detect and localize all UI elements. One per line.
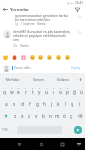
staticText: 12s: [13, 44, 18, 48]
button[interactable]: Recents: [52, 138, 73, 150]
button[interactable]: j: [48, 98, 55, 110]
button[interactable]: Paylaş: [70, 66, 82, 70]
button[interactable]: 6: [36, 86, 43, 98]
button[interactable]: ş: [69, 98, 76, 110]
button[interactable]: gunesmanzaralari gercekten harika bir ka…: [15, 14, 82, 26]
staticText: Yorum ekle...: [14, 66, 33, 70]
staticText: q: [3, 89, 6, 96]
staticText: ö: [63, 113, 66, 120]
staticText: Yanıtla: [20, 44, 29, 48]
staticText: 3: [18, 87, 20, 90]
button[interactable]: 5: [29, 86, 36, 98]
staticText: s: [13, 101, 16, 108]
button[interactable]: f: [26, 98, 34, 110]
button[interactable]: ö: [61, 110, 68, 122]
button[interactable]: 7: [43, 86, 50, 98]
staticText: w: [10, 89, 14, 96]
button[interactable]: ç: [68, 110, 75, 122]
staticText: 6: [39, 87, 41, 90]
button[interactable]: Emoji reaction: [37, 54, 44, 61]
staticText: 9: [60, 87, 62, 90]
button[interactable]: Emoji reaction: [55, 54, 62, 61]
staticText: 1 beğenme: [21, 22, 35, 26]
staticText: f: [29, 101, 31, 108]
button[interactable]: g: [34, 98, 41, 110]
staticText: 14:41: [75, 1, 83, 5]
staticText: c: [28, 113, 31, 120]
button[interactable]: Kullanıcı: [51, 73, 76, 86]
staticText: g: [36, 101, 39, 108]
button[interactable]: 9: [57, 86, 64, 98]
staticText: i: [79, 101, 81, 108]
button[interactable]: Emoji reaction: [2, 54, 9, 61]
button[interactable]: Shift: [0, 110, 11, 122]
button[interactable]: Emoji reaction: [29, 54, 36, 61]
button[interactable]: Backspace: [75, 110, 85, 122]
button[interactable]: Home: [30, 138, 52, 150]
staticText: z: [14, 113, 17, 120]
button[interactable]: ,: [9, 122, 17, 138]
button[interactable]: 3: [15, 86, 22, 98]
button[interactable]: Voice input: [76, 73, 84, 86]
button[interactable]: i: [76, 98, 83, 110]
staticText: 2: [11, 87, 13, 90]
staticText: Tamam: [33, 78, 44, 82]
button[interactable]: Tamam: [26, 73, 51, 86]
button[interactable]: k: [55, 98, 62, 110]
button[interactable]: Like: [77, 14, 82, 19]
staticText: n: [49, 113, 52, 120]
button[interactable]: Merhaba: [0, 73, 26, 86]
staticText: 0: [67, 87, 69, 90]
staticText: ş: [71, 101, 74, 108]
button[interactable]: Share: [69, 6, 85, 13]
button[interactable]: Emoji reaction: [20, 54, 27, 61]
button[interactable]: Emoji reaction: [64, 54, 71, 61]
button[interactable]: 2: [8, 86, 15, 98]
button[interactable]: h: [41, 98, 48, 110]
button[interactable]: d: [18, 98, 26, 110]
button[interactable]: 8: [50, 86, 57, 98]
button[interactable]: n: [47, 110, 54, 122]
button[interactable]: deniz981 Bunuçksd en-pıkı kazandiras, e…: [3, 30, 82, 48]
staticText: ç: [70, 113, 73, 120]
button[interactable]: x: [19, 110, 26, 122]
button[interactable]: Hide keyboard: [73, 138, 85, 150]
button[interactable]: ?123: [0, 122, 9, 138]
staticText: Kullanıcı: [57, 78, 70, 82]
button[interactable]: Emoji reaction: [11, 54, 18, 61]
button[interactable]: Like: [77, 30, 82, 35]
button[interactable]: b: [40, 110, 47, 122]
staticText: r: [25, 89, 27, 96]
staticText: m: [55, 113, 60, 120]
button[interactable]: l: [62, 98, 69, 110]
staticText: gunesmanzaralari gercekten harika bir ka…: [15, 14, 69, 22]
button[interactable]: Send: [74, 126, 82, 134]
button[interactable]: 0: [64, 86, 71, 98]
staticText: 5: [32, 87, 34, 90]
staticText: e: [17, 89, 20, 96]
button[interactable]: Emoji reaction: [46, 54, 53, 61]
staticText: y: [38, 89, 41, 96]
button[interactable]: s: [10, 98, 18, 110]
button[interactable]: a: [2, 98, 10, 110]
staticText: Merhaba: [6, 78, 20, 82]
staticText: Paylaş: [71, 66, 81, 70]
button[interactable]: Back: [8, 138, 30, 150]
staticText: k: [57, 101, 60, 108]
staticText: h: [43, 101, 46, 108]
staticText: ğ: [73, 89, 76, 96]
button[interactable]: ğ: [71, 86, 78, 98]
button[interactable]: m: [54, 110, 61, 122]
staticText: v: [35, 113, 38, 120]
button[interactable]: 4: [22, 86, 29, 98]
button[interactable]: 1: [0, 86, 8, 98]
staticText: d: [21, 101, 24, 108]
button[interactable]: z: [11, 110, 19, 122]
button[interactable]: c: [26, 110, 33, 122]
button[interactable]: ü: [78, 86, 85, 98]
staticText: x: [21, 113, 24, 120]
button[interactable]: v: [33, 110, 40, 122]
button[interactable]: Back: [0, 6, 10, 13]
